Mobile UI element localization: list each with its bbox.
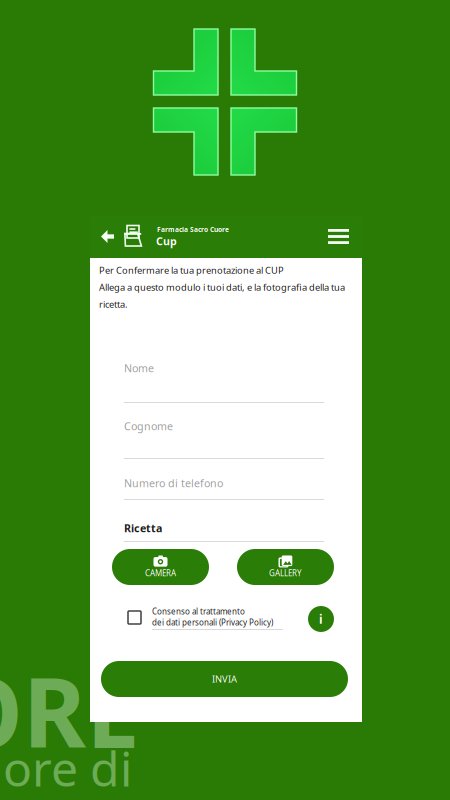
staticText: ricetta. <box>99 298 128 310</box>
staticText: CUORE <box>0 647 140 774</box>
staticText: CAMERA <box>145 568 176 578</box>
staticText: Farmacia Sacro Cuore <box>157 225 229 234</box>
staticText: Cup <box>156 234 177 248</box>
staticText: Sacro Cuore di <box>0 736 132 800</box>
staticText: Allega a questo modulo i tuoi dati, e la… <box>99 281 345 293</box>
staticText: Cognome <box>124 419 173 433</box>
button[interactable]: Menu <box>328 229 349 244</box>
staticText: Nome <box>124 361 154 375</box>
staticText: GALLERY <box>269 568 302 578</box>
staticText: INVIA <box>212 673 237 685</box>
button[interactable]: Consenso al trattamento dei dati persona… <box>128 611 141 624</box>
button[interactable]: CAMERA <box>112 549 209 585</box>
staticText: Ricetta <box>124 521 162 535</box>
button[interactable]: GALLERY <box>237 549 334 585</box>
staticText: Per Confermare la tua prenotazione al CU… <box>99 264 284 276</box>
button[interactable]: INVIA <box>101 661 348 697</box>
staticText: i <box>319 611 323 627</box>
button[interactable]: Informazioni privacy policy <box>308 606 334 632</box>
button[interactable]: Back <box>101 230 114 243</box>
staticText: Numero di telefono <box>124 476 223 490</box>
staticText: Consenso al trattamento <box>152 606 245 617</box>
staticText: dei dati personali (Privacy Policy) <box>152 617 273 628</box>
